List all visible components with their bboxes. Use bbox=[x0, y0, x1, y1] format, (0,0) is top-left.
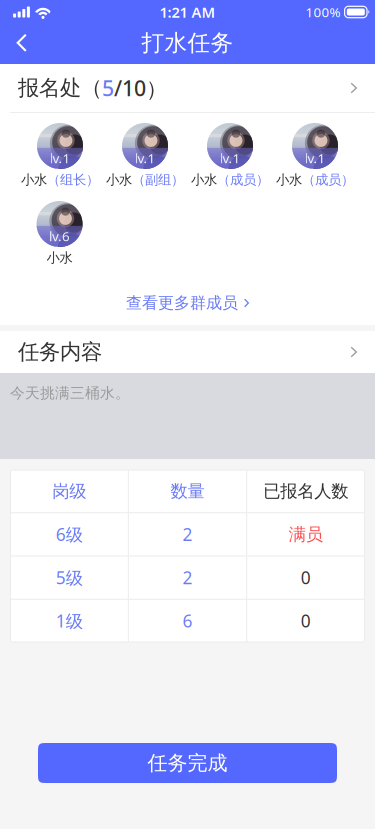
button[interactable]: 任务完成 bbox=[38, 743, 337, 783]
staticText: 任务内容 bbox=[18, 339, 102, 365]
button[interactable]: 任务内容 bbox=[0, 331, 375, 373]
button[interactable]: lv.6 bbox=[17, 201, 102, 266]
staticText: 小水 bbox=[106, 172, 132, 188]
staticText: 岗级 bbox=[52, 480, 86, 502]
staticText: 1级 bbox=[56, 609, 83, 632]
button[interactable]: lv.1 bbox=[187, 123, 272, 188]
staticText: 数量 bbox=[170, 480, 204, 502]
staticText: 查看更多群成员 bbox=[126, 293, 238, 313]
button[interactable]: Back bbox=[0, 23, 44, 63]
staticText: 2 bbox=[182, 566, 192, 589]
staticText: 5级 bbox=[56, 566, 83, 589]
button[interactable]: 查看更多群成员 bbox=[0, 288, 375, 318]
staticText: 小水 bbox=[191, 172, 217, 188]
staticText: 小水 bbox=[46, 250, 72, 266]
button[interactable]: lv.1 bbox=[102, 123, 187, 188]
staticText: 已报名人数 bbox=[263, 480, 348, 502]
staticText: lv.1 bbox=[304, 149, 325, 167]
staticText: （副组） bbox=[132, 172, 184, 188]
staticText: lv.1 bbox=[49, 149, 70, 167]
staticText: （成员） bbox=[302, 172, 354, 188]
staticText: 1:21 AM bbox=[159, 2, 215, 22]
staticText: 小水 bbox=[21, 172, 47, 188]
staticText: 打水任务 bbox=[141, 29, 233, 57]
staticText: 100% bbox=[306, 3, 341, 21]
staticText: 2 bbox=[182, 523, 192, 546]
staticText: lv.1 bbox=[219, 149, 240, 167]
staticText: 0 bbox=[301, 609, 311, 632]
staticText: 任务完成 bbox=[147, 751, 227, 775]
staticText: lv.1 bbox=[134, 149, 155, 167]
button[interactable]: 报名处（ bbox=[0, 64, 375, 112]
staticText: 满员 bbox=[289, 524, 323, 545]
staticText: 5 bbox=[102, 74, 114, 102]
staticText: 报名处（ bbox=[18, 75, 102, 101]
staticText: 6级 bbox=[56, 523, 83, 546]
button[interactable]: lv.1 bbox=[17, 123, 102, 188]
staticText: （组长） bbox=[47, 172, 99, 188]
staticText: 6 bbox=[182, 609, 192, 632]
staticText: /10） bbox=[114, 74, 167, 102]
staticText: 小水 bbox=[276, 172, 302, 188]
staticText: lv.6 bbox=[49, 227, 70, 245]
staticText: 0 bbox=[301, 566, 311, 589]
staticText: 今天挑满三桶水。 bbox=[10, 384, 130, 402]
staticText: （成员） bbox=[217, 172, 269, 188]
button[interactable]: lv.1 bbox=[272, 123, 357, 188]
